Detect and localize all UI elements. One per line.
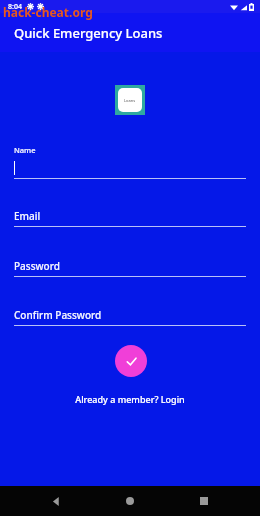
button[interactable]: Home [118, 489, 142, 513]
staticText: Name [14, 145, 36, 155]
staticText: Confirm Password [14, 308, 102, 322]
staticText: hack-cheat.org [3, 4, 93, 20]
staticText: Quick Emergency Loans [14, 24, 163, 42]
button[interactable]: Submit registration [115, 345, 147, 377]
staticText: Loans [124, 98, 136, 103]
staticText: Email [14, 209, 41, 223]
button[interactable]: Email [14, 209, 246, 227]
button[interactable] [14, 155, 246, 178]
button[interactable]: Password [14, 259, 246, 277]
staticText: Password [14, 259, 60, 273]
staticText: 8:04 [8, 2, 22, 12]
button[interactable]: Back [44, 489, 68, 513]
button[interactable]: Confirm Password [14, 308, 246, 326]
staticText: Already a member? Login [75, 393, 185, 405]
button[interactable]: Recent apps [192, 489, 216, 513]
button[interactable]: Already a member? Login [69, 390, 191, 408]
